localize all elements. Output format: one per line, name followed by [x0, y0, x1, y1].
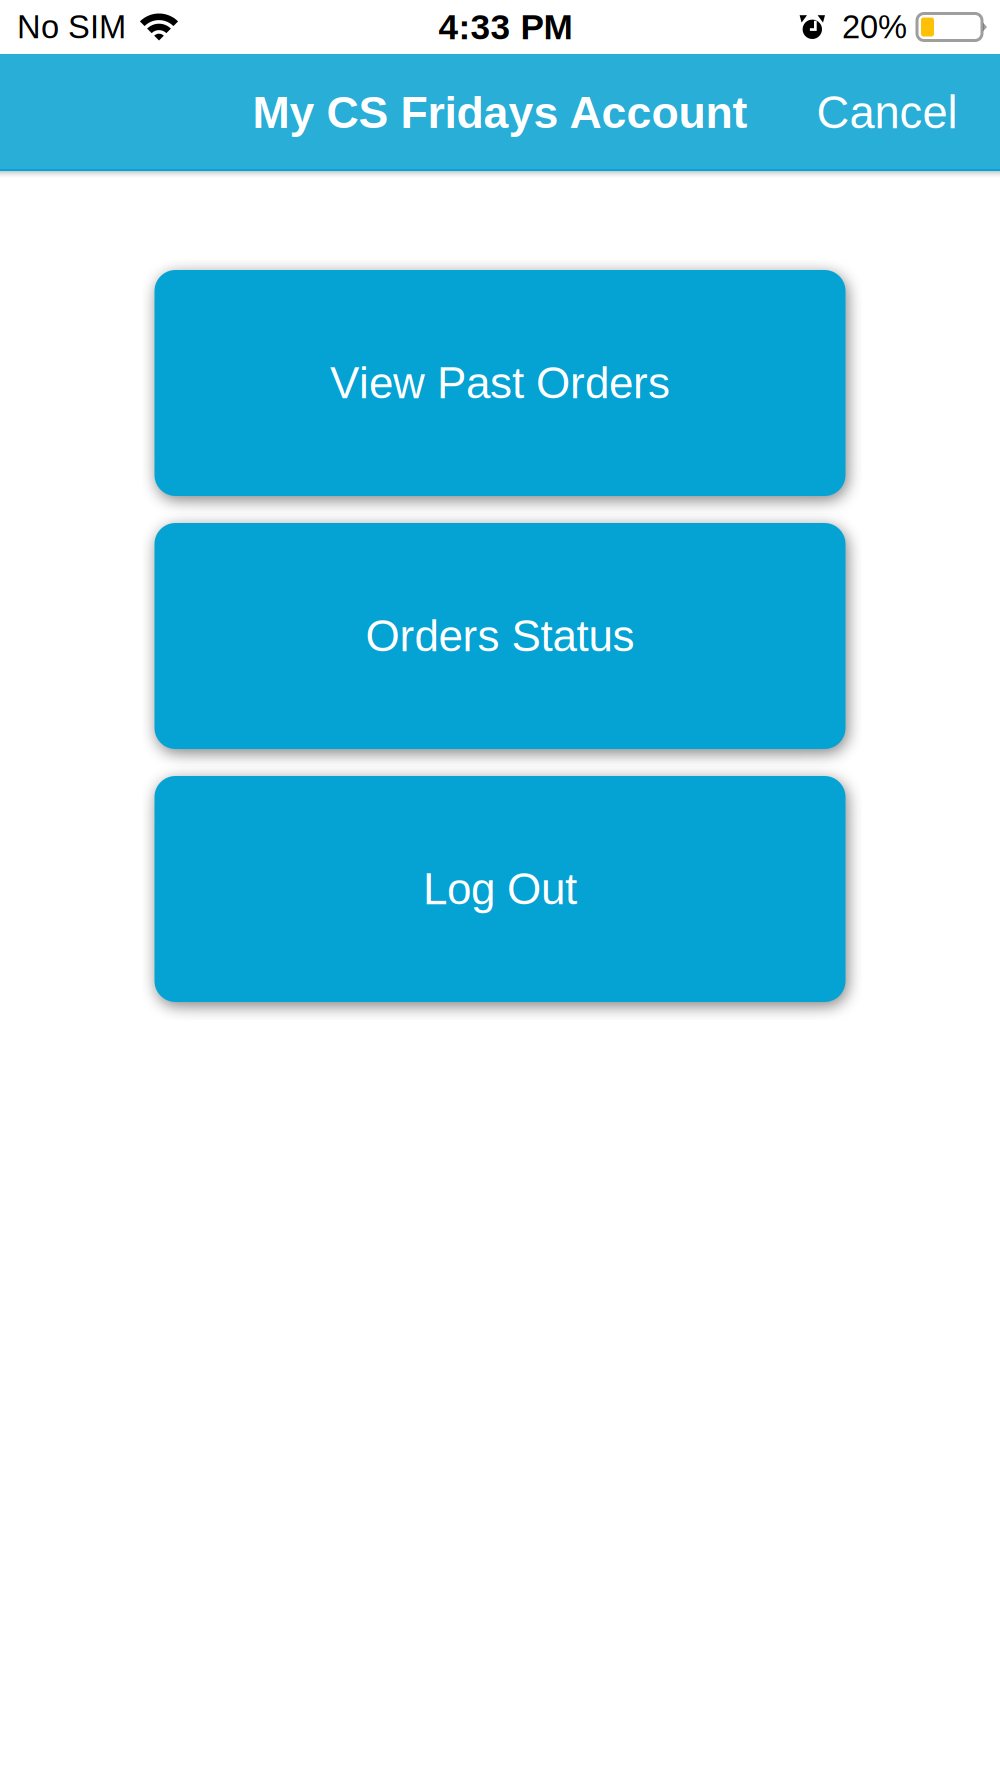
staticText: No SIM — [17, 9, 126, 45]
staticText: My CS Fridays Account — [252, 87, 747, 137]
button[interactable]: Orders Status — [154, 523, 845, 749]
staticText: View Past Orders — [330, 358, 670, 408]
staticText: Orders Status — [365, 611, 634, 661]
button[interactable]: Log Out — [154, 776, 845, 1002]
staticText: Log Out — [423, 864, 577, 914]
staticText: 20% — [842, 9, 907, 45]
staticText: 4:33 PM — [438, 7, 572, 47]
staticText: Cancel — [816, 87, 957, 138]
button[interactable]: View Past Orders — [154, 270, 845, 496]
button[interactable]: Cancel — [774, 54, 1000, 170]
